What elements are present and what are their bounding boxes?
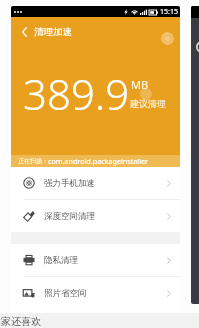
staticText: MB bbox=[131, 77, 149, 92]
button[interactable]: 照片省空间 bbox=[11, 277, 180, 309]
staticText: 清理加速 bbox=[34, 26, 72, 38]
staticText: 389.9 bbox=[23, 65, 130, 122]
button[interactable]: Settings bbox=[161, 32, 174, 45]
button[interactable]: 深度空间清理 bbox=[11, 200, 180, 232]
staticText: 建议清理 bbox=[130, 98, 166, 109]
staticText: 15:15 bbox=[160, 7, 178, 17]
button[interactable]: 隐私清理 bbox=[11, 244, 180, 276]
staticText: 照片省空间 bbox=[44, 288, 87, 299]
button[interactable]: 强力手机加速 bbox=[11, 167, 180, 199]
staticText: 隐私清理 bbox=[44, 255, 78, 266]
staticText: 强力手机加速 bbox=[44, 178, 95, 189]
staticText: 深度空间清理 bbox=[44, 211, 95, 222]
button[interactable]: Back bbox=[17, 22, 31, 42]
staticText: com.android.packageinstaller bbox=[48, 156, 149, 166]
staticText: 大家还喜欢 bbox=[0, 315, 41, 328]
staticText: 正在扫描： bbox=[18, 157, 48, 165]
